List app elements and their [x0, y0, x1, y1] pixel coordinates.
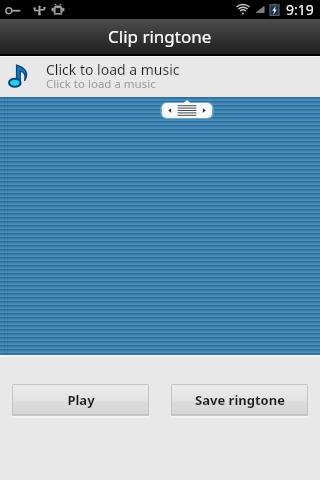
staticText: Click to load a music — [46, 60, 180, 79]
staticText: Clip ringtone — [108, 25, 212, 48]
button[interactable]: Play — [12, 384, 149, 416]
staticText: Click to load a music — [46, 76, 156, 92]
staticText: Save ringtone — [195, 391, 285, 409]
button[interactable]: Click to load a music — [0, 57, 320, 97]
button[interactable]: Save ringtone — [171, 384, 308, 416]
staticText: Play — [67, 391, 95, 409]
staticText: 9:19 — [286, 0, 314, 19]
button[interactable]: Playback marker — [161, 98, 213, 120]
